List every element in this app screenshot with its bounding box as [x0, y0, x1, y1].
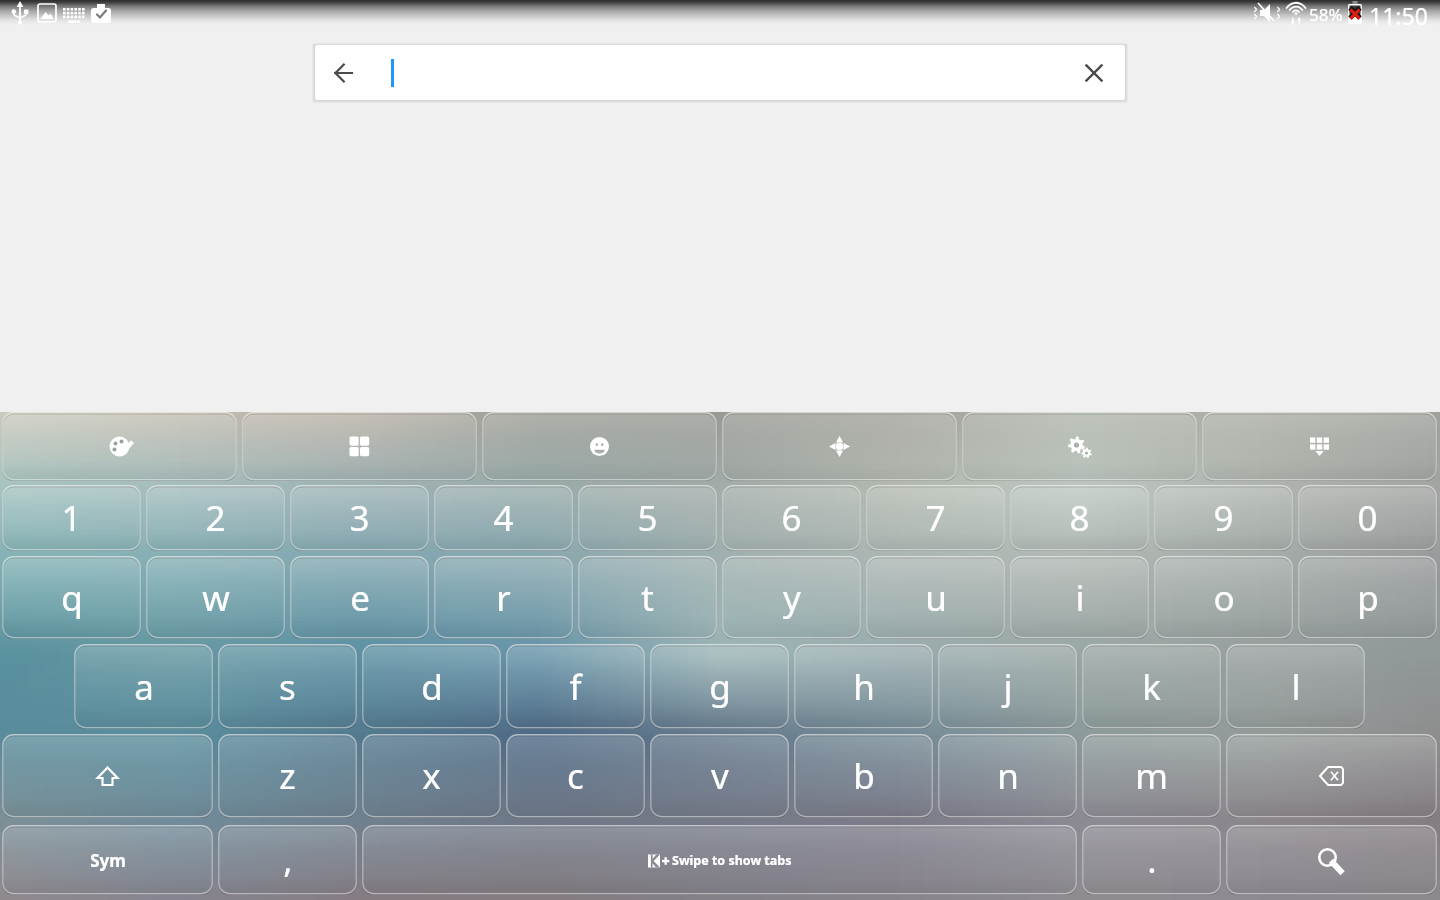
button[interactable]: 3	[290, 485, 429, 551]
button[interactable]: z	[218, 734, 357, 818]
staticText: h	[853, 663, 875, 711]
staticText: o	[1213, 574, 1235, 622]
button[interactable]: a	[74, 644, 213, 729]
button[interactable]: Search	[1226, 825, 1437, 895]
staticText: z	[279, 752, 296, 800]
button[interactable]: Theme	[2, 412, 237, 481]
staticText: e	[350, 574, 370, 622]
button[interactable]: e	[290, 556, 429, 639]
button[interactable]: x	[362, 734, 501, 818]
button[interactable]: g	[650, 644, 789, 729]
button[interactable]: 9	[1154, 485, 1293, 551]
button[interactable]: b	[794, 734, 933, 818]
staticText: p	[1357, 574, 1379, 622]
staticText: t	[641, 574, 654, 622]
staticText: v	[711, 752, 729, 800]
staticText: 5	[637, 494, 658, 542]
button[interactable]: .	[1082, 825, 1221, 895]
staticText: r	[496, 574, 511, 622]
staticText: q	[61, 574, 83, 622]
staticText: b	[853, 752, 875, 800]
button[interactable]: Back	[322, 51, 366, 95]
staticText: y	[783, 574, 801, 622]
button[interactable]: m	[1082, 734, 1221, 818]
button[interactable]: Number pad	[242, 412, 477, 481]
staticText: g	[709, 663, 731, 711]
staticText: ,	[283, 836, 293, 884]
staticText: 58%	[1309, 3, 1343, 26]
staticText: 3	[349, 494, 370, 542]
staticText: l	[1291, 663, 1301, 711]
button[interactable]: Emoji	[482, 412, 717, 481]
button[interactable]: Split keyboard	[1202, 412, 1437, 481]
button[interactable]: v	[650, 734, 789, 818]
button[interactable]: y	[722, 556, 861, 639]
button[interactable]: Space	[362, 825, 1077, 895]
staticText: 2	[205, 494, 226, 542]
button[interactable]: 6	[722, 485, 861, 551]
button[interactable]: 0	[1298, 485, 1437, 551]
button[interactable]: t	[578, 556, 717, 639]
staticText: 7	[925, 494, 946, 542]
button[interactable]: Clear	[1072, 51, 1116, 95]
button[interactable]: j	[938, 644, 1077, 729]
button[interactable]: d	[362, 644, 501, 729]
staticText: k	[1142, 663, 1161, 711]
staticText: x	[422, 752, 441, 800]
staticText: a	[134, 663, 154, 711]
button[interactable]: Shift	[2, 734, 213, 818]
button[interactable]: o	[1154, 556, 1293, 639]
button[interactable]: n	[938, 734, 1077, 818]
staticText: 1	[61, 494, 82, 542]
button[interactable]: 8	[1010, 485, 1149, 551]
staticText: 9	[1213, 494, 1234, 542]
button[interactable]: w	[146, 556, 285, 639]
button[interactable]: r	[434, 556, 573, 639]
staticText: Sym	[90, 849, 126, 872]
button[interactable]: 4	[434, 485, 573, 551]
button[interactable]: 7	[866, 485, 1005, 551]
button[interactable]: Sym	[2, 825, 213, 895]
button[interactable]: Settings	[962, 412, 1197, 481]
staticText: i	[1075, 574, 1085, 622]
button[interactable]: 5	[578, 485, 717, 551]
button[interactable]: Move keyboard	[722, 412, 957, 481]
button[interactable]: k	[1082, 644, 1221, 729]
staticText: u	[925, 574, 947, 622]
button[interactable]: 2	[146, 485, 285, 551]
button[interactable]: Backspace	[1226, 734, 1437, 818]
staticText: Swipe to show tabs	[672, 852, 792, 869]
button[interactable]: 1	[2, 485, 141, 551]
button[interactable]: p	[1298, 556, 1437, 639]
button[interactable]: s	[218, 644, 357, 729]
button[interactable]: ,	[218, 825, 357, 895]
button[interactable]: u	[866, 556, 1005, 639]
staticText: 0	[1357, 494, 1378, 542]
button[interactable]: h	[794, 644, 933, 729]
staticText: f	[569, 663, 582, 711]
staticText: j	[1003, 663, 1013, 711]
button[interactable]: q	[2, 556, 141, 639]
staticText: m	[1135, 752, 1168, 800]
staticText: .	[1147, 836, 1157, 884]
button[interactable]: c	[506, 734, 645, 818]
staticText: 11:50	[1369, 0, 1428, 31]
button[interactable]: i	[1010, 556, 1149, 639]
staticText: 6	[781, 494, 802, 542]
staticText: n	[997, 752, 1019, 800]
staticText: d	[421, 663, 443, 711]
button[interactable]: f	[506, 644, 645, 729]
staticText: w	[202, 574, 230, 622]
button[interactable]: l	[1226, 644, 1365, 729]
staticText: 4	[493, 494, 514, 542]
staticText: s	[279, 663, 296, 711]
staticText: 8	[1069, 494, 1090, 542]
staticText: c	[567, 752, 584, 800]
